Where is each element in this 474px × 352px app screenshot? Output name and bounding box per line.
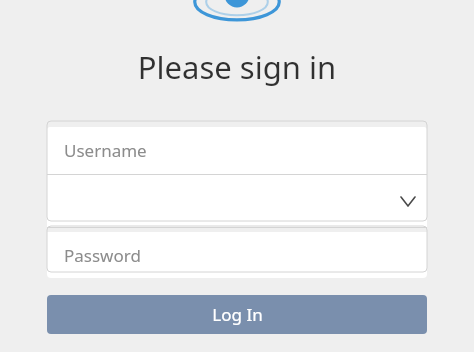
button[interactable]: Username [47, 127, 427, 174]
staticText: Username [64, 139, 147, 162]
staticText: Please sign in [47, 46, 427, 88]
button[interactable]: Select an option [47, 175, 427, 227]
button[interactable]: Password [47, 232, 427, 278]
button[interactable]: Log In [47, 295, 427, 334]
staticText: Log In [212, 303, 263, 326]
staticText: Password [64, 244, 141, 267]
